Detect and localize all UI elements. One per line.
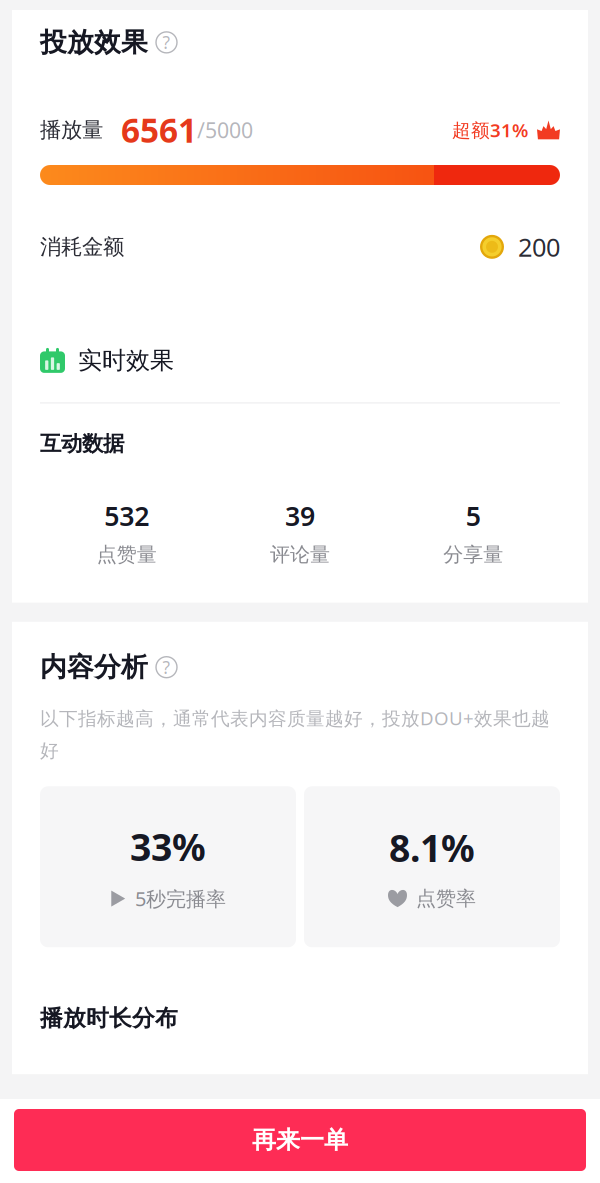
staticText: 5 xyxy=(466,498,481,533)
staticText: 33% xyxy=(130,822,206,871)
button[interactable]: 再来一单 xyxy=(14,1109,586,1171)
staticText: 互动数据 xyxy=(40,431,124,457)
staticText: 以下指标越高，通常代表内容质量越好，投放DOU+效果也越好 xyxy=(40,706,550,762)
button[interactable]: 关于投放效果 xyxy=(156,32,177,53)
staticText: 200 xyxy=(504,230,560,264)
staticText: 39 xyxy=(285,498,315,533)
staticText: /5000 xyxy=(197,116,253,144)
staticText: 投放效果 xyxy=(40,26,148,59)
staticText: 超额31% xyxy=(452,117,528,142)
staticText: 播放时长分布 xyxy=(40,1004,178,1032)
staticText: 消耗金额 xyxy=(40,234,124,260)
staticText: 532 xyxy=(104,498,149,533)
staticText: ? xyxy=(162,656,170,679)
staticText: 分享量 xyxy=(443,542,503,567)
staticText: 6561 xyxy=(103,108,197,152)
staticText: ? xyxy=(162,31,170,54)
staticText: 点赞量 xyxy=(97,542,157,567)
staticText: 8.1% xyxy=(389,823,475,872)
staticText: 播放量 xyxy=(40,117,103,143)
staticText: 内容分析 xyxy=(40,651,148,684)
staticText: 点赞率 xyxy=(416,886,476,911)
staticText: 再来一单 xyxy=(252,1125,348,1155)
button[interactable]: 关于内容分析 xyxy=(156,657,177,678)
staticText: 评论量 xyxy=(270,542,330,567)
staticText: 实时效果 xyxy=(78,346,174,375)
staticText: 5秒完播率 xyxy=(135,885,226,912)
